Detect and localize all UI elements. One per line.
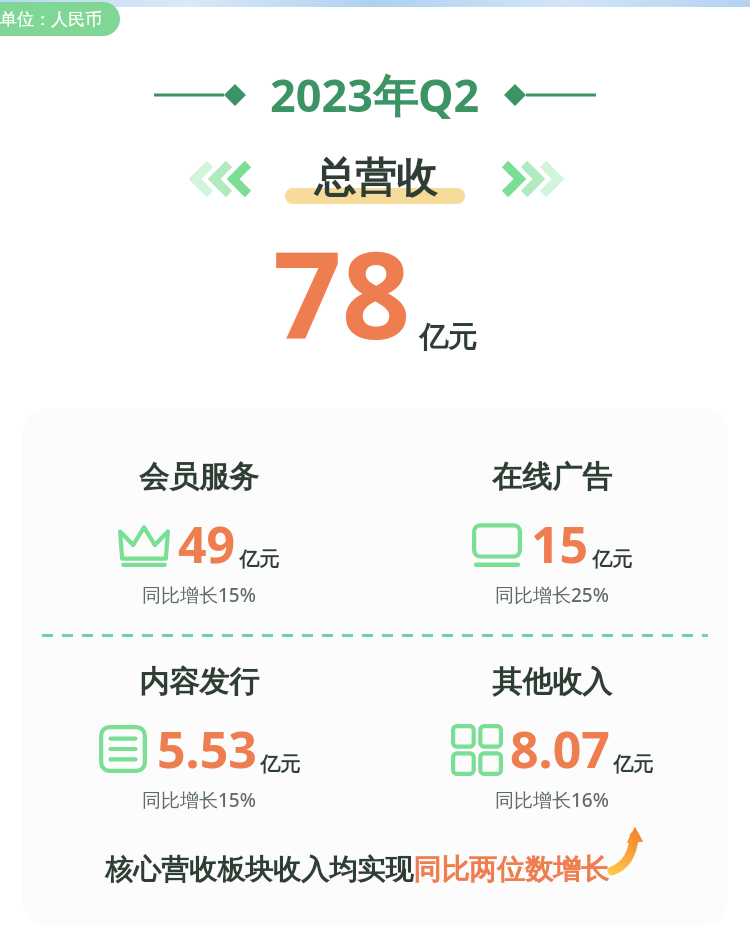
staticText: 亿元 (260, 752, 300, 777)
staticText: 会员服务 (139, 458, 259, 496)
other: 会员服务 (118, 518, 170, 570)
staticText: 15 (531, 510, 589, 578)
staticText: 核心营收板块收入均实现同比两位数增长 (105, 852, 609, 887)
button[interactable]: 在线广告 (375, 458, 728, 608)
staticText: 亿元 (613, 752, 653, 777)
other: 在线广告 (471, 518, 523, 570)
button[interactable]: 内容发行 (22, 663, 375, 813)
staticText: 同比增长15% (142, 787, 256, 813)
button[interactable]: 会员服务 (22, 458, 375, 608)
staticText: 其他收入 (492, 663, 612, 701)
staticText: 78 (273, 211, 411, 374)
staticText: 5.53 (157, 715, 257, 783)
staticText: 亿元 (239, 547, 279, 572)
button[interactable]: 单位：人民币 (0, 2, 120, 36)
staticText: 内容发行 (139, 663, 259, 701)
staticText: 同比增长16% (495, 787, 609, 813)
other: 其他收入 (450, 723, 502, 775)
staticText: 总营收 (314, 153, 437, 205)
staticText: 同比增长25% (495, 582, 609, 608)
button[interactable]: 其他收入 (375, 663, 728, 813)
staticText: 在线广告 (492, 458, 612, 496)
staticText: 8.07 (510, 715, 610, 783)
staticText: 单位：人民币 (0, 9, 102, 30)
other: 内容发行 (97, 723, 149, 775)
staticText: 2023年Q2 (270, 64, 480, 125)
staticText: 同比增长15% (142, 582, 256, 608)
staticText: 49 (178, 510, 236, 578)
staticText: 亿元 (419, 319, 477, 356)
staticText: 亿元 (592, 547, 632, 572)
